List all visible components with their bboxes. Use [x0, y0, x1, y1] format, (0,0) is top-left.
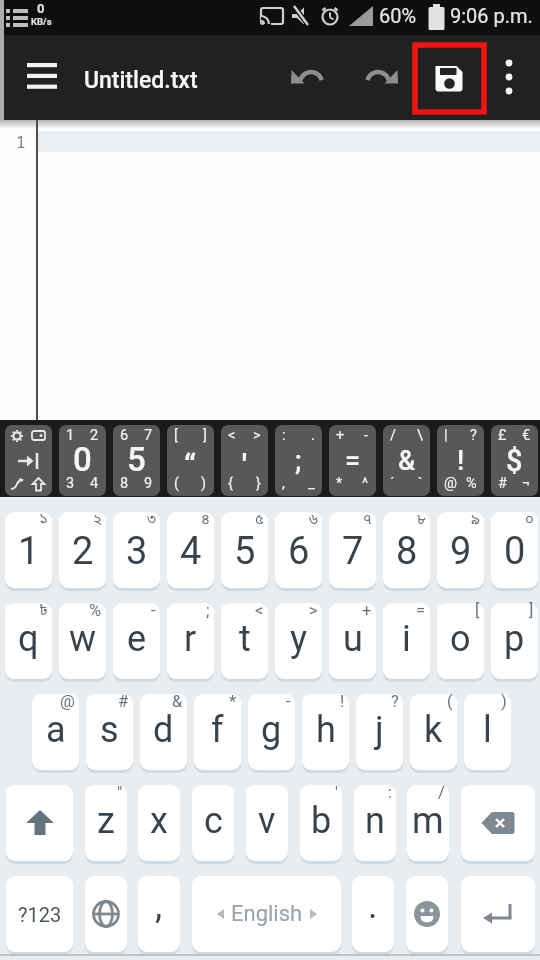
button[interactable]: z: [85, 785, 127, 861]
button[interactable]: w: [59, 603, 106, 679]
staticText: #: [498, 475, 507, 492]
button[interactable]: e: [113, 603, 160, 679]
staticText: u: [343, 618, 363, 660]
staticText: 9: [450, 529, 472, 574]
button[interactable]: 5: [113, 425, 160, 496]
staticText: =: [345, 445, 361, 477]
button[interactable]: [6, 785, 73, 861]
staticText: 1: [66, 427, 75, 444]
button[interactable]: 2: [59, 512, 106, 588]
button[interactable]: ,: [138, 876, 180, 952]
staticText: w: [69, 618, 97, 660]
staticText: 4: [90, 475, 99, 492]
button[interactable]: j: [356, 694, 403, 770]
button[interactable]: r: [167, 603, 214, 679]
staticText: ]: [203, 427, 207, 444]
button[interactable]: ': [221, 425, 268, 496]
staticText: ?123: [18, 903, 62, 926]
staticText: 5: [234, 529, 256, 574]
button[interactable]: 3: [113, 512, 160, 588]
button[interactable]: i: [383, 603, 430, 679]
button[interactable]: ?123: [6, 876, 73, 952]
staticText: ৫: [255, 510, 264, 530]
staticText: !: [340, 692, 345, 711]
staticText: ': [242, 447, 247, 482]
button[interactable]: $: [491, 425, 538, 496]
button[interactable]: q: [5, 603, 52, 679]
button[interactable]: [461, 876, 535, 952]
button[interactable]: n: [354, 785, 396, 861]
button[interactable]: 6: [275, 512, 322, 588]
staticText: :: [388, 783, 392, 802]
staticText: “: [184, 447, 197, 482]
button[interactable]: 9: [437, 512, 484, 588]
button[interactable]: a: [32, 694, 79, 770]
button[interactable]: [487, 53, 531, 101]
staticText: 5: [127, 440, 146, 479]
staticText: }: [256, 475, 261, 492]
button[interactable]: s: [86, 694, 133, 770]
staticText: ০: [525, 510, 534, 530]
staticText: £: [498, 427, 507, 444]
staticText: ¬: [522, 475, 531, 492]
button[interactable]: !: [437, 425, 484, 496]
button[interactable]: c: [192, 785, 234, 861]
button[interactable]: x: [138, 785, 180, 861]
button[interactable]: b: [300, 785, 342, 861]
staticText: ': [335, 783, 338, 802]
staticText: e: [127, 618, 147, 660]
button[interactable]: k: [410, 694, 457, 770]
button[interactable]: 8: [383, 512, 430, 588]
button[interactable]: u: [329, 603, 376, 679]
button[interactable]: p: [491, 603, 538, 679]
staticText: ৳: [39, 601, 48, 621]
staticText: +: [362, 601, 372, 620]
staticText: -: [364, 427, 369, 444]
staticText: 0: [504, 529, 526, 574]
button[interactable]: f: [194, 694, 241, 770]
staticText: =: [416, 601, 426, 620]
button[interactable]: &: [383, 425, 430, 496]
button[interactable]: [5, 425, 52, 496]
staticText: ?: [470, 427, 477, 444]
staticText: 6: [288, 529, 310, 574]
staticText: o: [450, 618, 471, 660]
button[interactable]: 0: [491, 512, 538, 588]
button[interactable]: [357, 53, 405, 101]
button[interactable]: 7: [329, 512, 376, 588]
staticText: >: [309, 601, 318, 620]
button[interactable]: m: [407, 785, 449, 861]
staticText: z: [97, 800, 115, 842]
button[interactable]: o: [437, 603, 484, 679]
staticText: [: [475, 601, 480, 620]
button[interactable]: 5: [221, 512, 268, 588]
button[interactable]: [425, 53, 473, 101]
staticText: `: [418, 475, 423, 492]
button[interactable]: g: [248, 694, 295, 770]
staticText: 3: [66, 475, 75, 492]
button[interactable]: y: [275, 603, 322, 679]
button[interactable]: [406, 876, 448, 952]
staticText: 8: [120, 475, 129, 492]
button[interactable]: 4: [167, 512, 214, 588]
button[interactable]: English: [192, 876, 341, 952]
staticText: ]: [529, 601, 534, 620]
button[interactable]: t: [221, 603, 268, 679]
button[interactable]: .: [352, 876, 394, 952]
button[interactable]: [18, 52, 66, 100]
staticText: ৭: [363, 510, 372, 530]
button[interactable]: ;: [275, 425, 322, 496]
button[interactable]: [461, 785, 535, 861]
button[interactable]: “: [167, 425, 214, 496]
staticText: f: [211, 709, 224, 751]
button[interactable]: 1: [5, 512, 52, 588]
button[interactable]: [284, 53, 332, 101]
button[interactable]: h: [302, 694, 349, 770]
button[interactable]: =: [329, 425, 376, 496]
button[interactable]: l: [464, 694, 511, 770]
button[interactable]: d: [140, 694, 187, 770]
staticText: ,: [282, 475, 285, 492]
button[interactable]: [85, 876, 127, 952]
button[interactable]: 0: [59, 425, 106, 496]
button[interactable]: v: [246, 785, 288, 861]
